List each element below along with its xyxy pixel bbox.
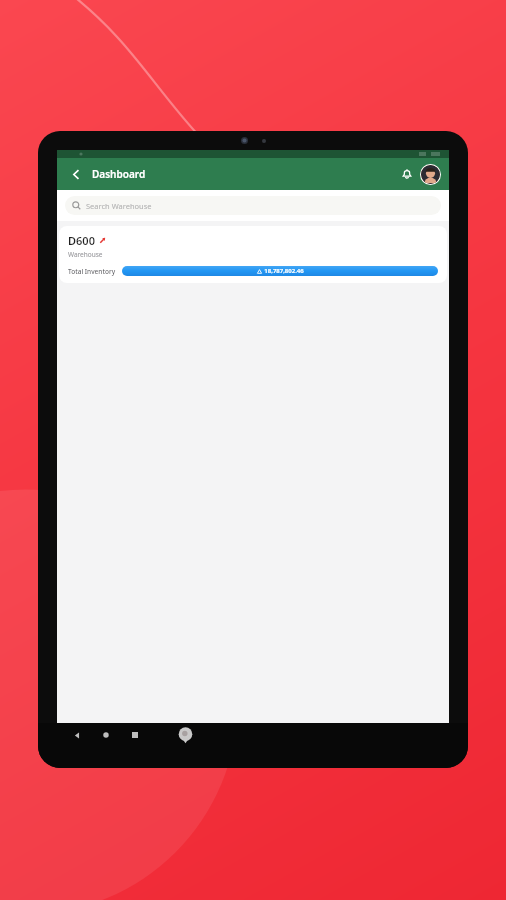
- button[interactable]: Pointer: [175, 725, 195, 745]
- staticText: Warehouse: [68, 250, 103, 259]
- button[interactable]: D600: [59, 226, 447, 283]
- staticText: D600: [68, 233, 95, 248]
- button[interactable]: Search Warehouse: [65, 196, 441, 215]
- button[interactable]: Back: [68, 726, 86, 744]
- staticText: 18,787,802.46: [264, 267, 304, 275]
- button[interactable]: Recents: [126, 726, 144, 744]
- button[interactable]: Home: [97, 726, 115, 744]
- staticText: Search Warehouse: [86, 201, 152, 211]
- button[interactable]: Profile: [421, 165, 440, 184]
- button[interactable]: Notifications: [396, 163, 418, 185]
- staticText: Total Inventory: [68, 267, 116, 276]
- button[interactable]: Back: [65, 163, 87, 185]
- staticText: Dashboard: [92, 167, 146, 181]
